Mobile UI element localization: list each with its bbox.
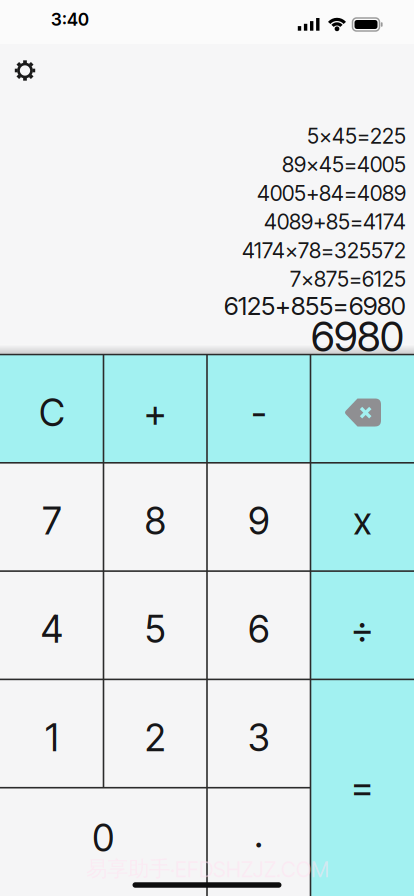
staticText: 4005+84=4089 bbox=[257, 181, 406, 206]
button[interactable]: 1 bbox=[0, 679, 103, 788]
staticText: 5 bbox=[145, 607, 166, 651]
staticText: - bbox=[251, 391, 266, 435]
staticText: 6980 bbox=[311, 312, 404, 361]
staticText: 2 bbox=[145, 715, 166, 759]
button[interactable]: - bbox=[207, 354, 310, 463]
button[interactable]: 9 bbox=[207, 463, 310, 571]
staticText: 4 bbox=[41, 607, 63, 651]
staticText: 4089+85=4174 bbox=[264, 209, 406, 234]
staticText: 1 bbox=[45, 715, 58, 759]
button[interactable]: + bbox=[103, 354, 207, 463]
button[interactable]: 2 bbox=[103, 679, 207, 788]
staticText: = bbox=[351, 765, 374, 809]
button[interactable]: Delete bbox=[310, 354, 414, 463]
staticText: C bbox=[39, 391, 64, 435]
staticText: 4174x78=325572 bbox=[242, 238, 406, 263]
button[interactable]: ÷ bbox=[310, 571, 414, 679]
staticText: 7 bbox=[42, 499, 61, 543]
staticText: 易享助手·EFDSHZJZ.COM bbox=[86, 856, 329, 882]
button[interactable]: 4 bbox=[0, 571, 103, 679]
staticText: 89x45=4005 bbox=[282, 152, 406, 177]
button[interactable]: 3 bbox=[207, 679, 310, 788]
button[interactable]: . bbox=[207, 788, 310, 896]
button[interactable]: x bbox=[310, 463, 414, 571]
button[interactable]: Settings bbox=[9, 54, 41, 86]
button[interactable]: = bbox=[310, 679, 414, 896]
staticText: . bbox=[254, 812, 263, 856]
button[interactable]: 6 bbox=[207, 571, 310, 679]
staticText: 7x875=6125 bbox=[290, 266, 406, 292]
staticText: 3 bbox=[248, 715, 270, 759]
button[interactable]: 8 bbox=[103, 463, 207, 571]
staticText: 3:40 bbox=[51, 9, 89, 30]
button[interactable]: C bbox=[0, 354, 103, 463]
staticText: + bbox=[144, 391, 167, 435]
button[interactable]: 7 bbox=[0, 463, 103, 571]
staticText: 6125+855=6980 bbox=[224, 291, 406, 321]
staticText: x bbox=[353, 499, 371, 543]
button[interactable]: 0 bbox=[0, 788, 207, 896]
staticText: 5x45=225 bbox=[307, 123, 406, 149]
staticText: 0 bbox=[92, 816, 114, 860]
staticText: 6 bbox=[248, 607, 269, 651]
staticText: ÷ bbox=[351, 607, 374, 651]
button[interactable]: 5 bbox=[103, 571, 207, 679]
staticText: 9 bbox=[248, 499, 269, 543]
staticText: 8 bbox=[145, 499, 166, 543]
